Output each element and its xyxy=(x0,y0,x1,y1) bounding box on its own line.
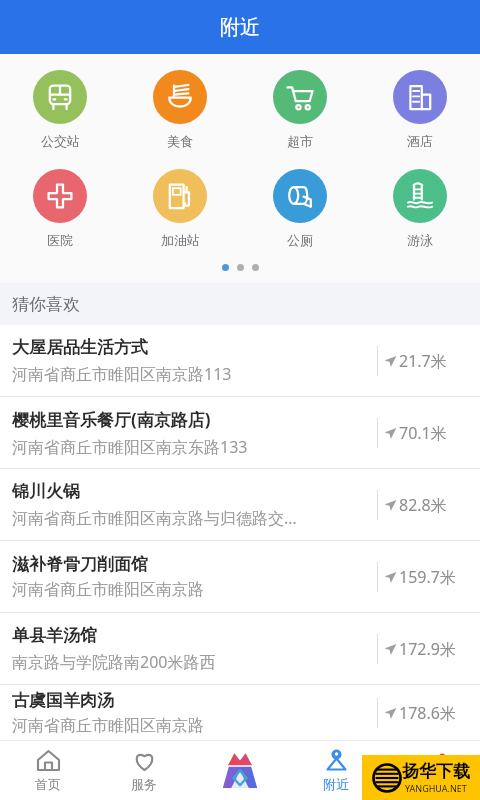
button[interactable]: 樱桃里音乐餐厅(南京路店) xyxy=(0,397,480,468)
button[interactable]: 酒店 xyxy=(360,64,480,155)
staticText: YANGHUA.NET xyxy=(405,782,467,794)
button[interactable]: 大屋居品生活方式 xyxy=(0,325,480,396)
button[interactable]: 美食 xyxy=(120,64,240,155)
staticText: 单县羊汤馆 xyxy=(12,625,97,646)
staticText: 加油站 xyxy=(161,232,200,248)
button[interactable]: 公交站 xyxy=(0,64,120,155)
staticText: 172.9米 xyxy=(399,638,456,660)
staticText: 大屋居品生活方式 xyxy=(12,337,148,358)
button[interactable]: 加油站 xyxy=(120,163,240,254)
staticText: 首页 xyxy=(35,776,61,792)
staticText: 南京路与学院路南200米路西 xyxy=(12,651,216,673)
staticText: 河南省商丘市睢阳区南京路113 xyxy=(12,363,232,385)
button[interactable]: 附近 xyxy=(288,740,384,800)
staticText: 河南省商丘市睢阳区南京路 xyxy=(12,580,204,600)
staticText: 游泳 xyxy=(407,232,433,248)
button[interactable]: 医院 xyxy=(0,163,120,254)
staticText: 公交站 xyxy=(41,133,80,149)
staticText: 河南省商丘市睢阳区南京路 xyxy=(12,716,204,736)
staticText: 锦川火锅 xyxy=(12,481,80,502)
staticText: 附近 xyxy=(220,15,260,40)
staticText: 滋补脊骨刀削面馆 xyxy=(12,554,148,575)
button[interactable]: 滋补脊骨刀削面馆 xyxy=(0,541,480,612)
staticText: 159.7米 xyxy=(399,566,456,588)
staticText: 酒店 xyxy=(407,133,433,149)
button[interactable]: 单县羊汤馆 xyxy=(0,613,480,684)
staticText: 河南省商丘市睢阳区南京东路133 xyxy=(12,436,248,458)
staticText: 樱桃里音乐餐厅(南京路店) xyxy=(12,408,211,431)
button[interactable]: 首页 xyxy=(0,740,96,800)
staticText: 古虞国羊肉汤 xyxy=(12,690,114,711)
button[interactable]: 扫一扫 xyxy=(192,740,288,800)
staticText: 178.6米 xyxy=(399,702,456,724)
staticText: 附近 xyxy=(323,776,349,792)
staticText: 超市 xyxy=(287,133,313,149)
staticText: 服务 xyxy=(131,776,157,792)
staticText: 扬华下载 xyxy=(402,761,470,782)
button[interactable]: 公厕 xyxy=(240,163,360,254)
button[interactable]: 我的 xyxy=(384,740,480,800)
button[interactable]: 古虞国羊肉汤 xyxy=(0,685,480,740)
button[interactable]: 服务 xyxy=(96,740,192,800)
staticText: 21.7米 xyxy=(399,350,447,372)
button[interactable]: 锦川火锅 xyxy=(0,469,480,540)
staticText: 医院 xyxy=(47,232,73,248)
staticText: 美食 xyxy=(167,133,193,149)
staticText: 公厕 xyxy=(287,232,313,248)
staticText: 猜你喜欢 xyxy=(12,294,80,315)
staticText: 70.1米 xyxy=(399,422,447,444)
staticText: 82.8米 xyxy=(399,494,447,516)
staticText: 河南省商丘市睢阳区南京路与归德路交… xyxy=(12,507,297,529)
button[interactable]: 游泳 xyxy=(360,163,480,254)
button[interactable]: 超市 xyxy=(240,64,360,155)
